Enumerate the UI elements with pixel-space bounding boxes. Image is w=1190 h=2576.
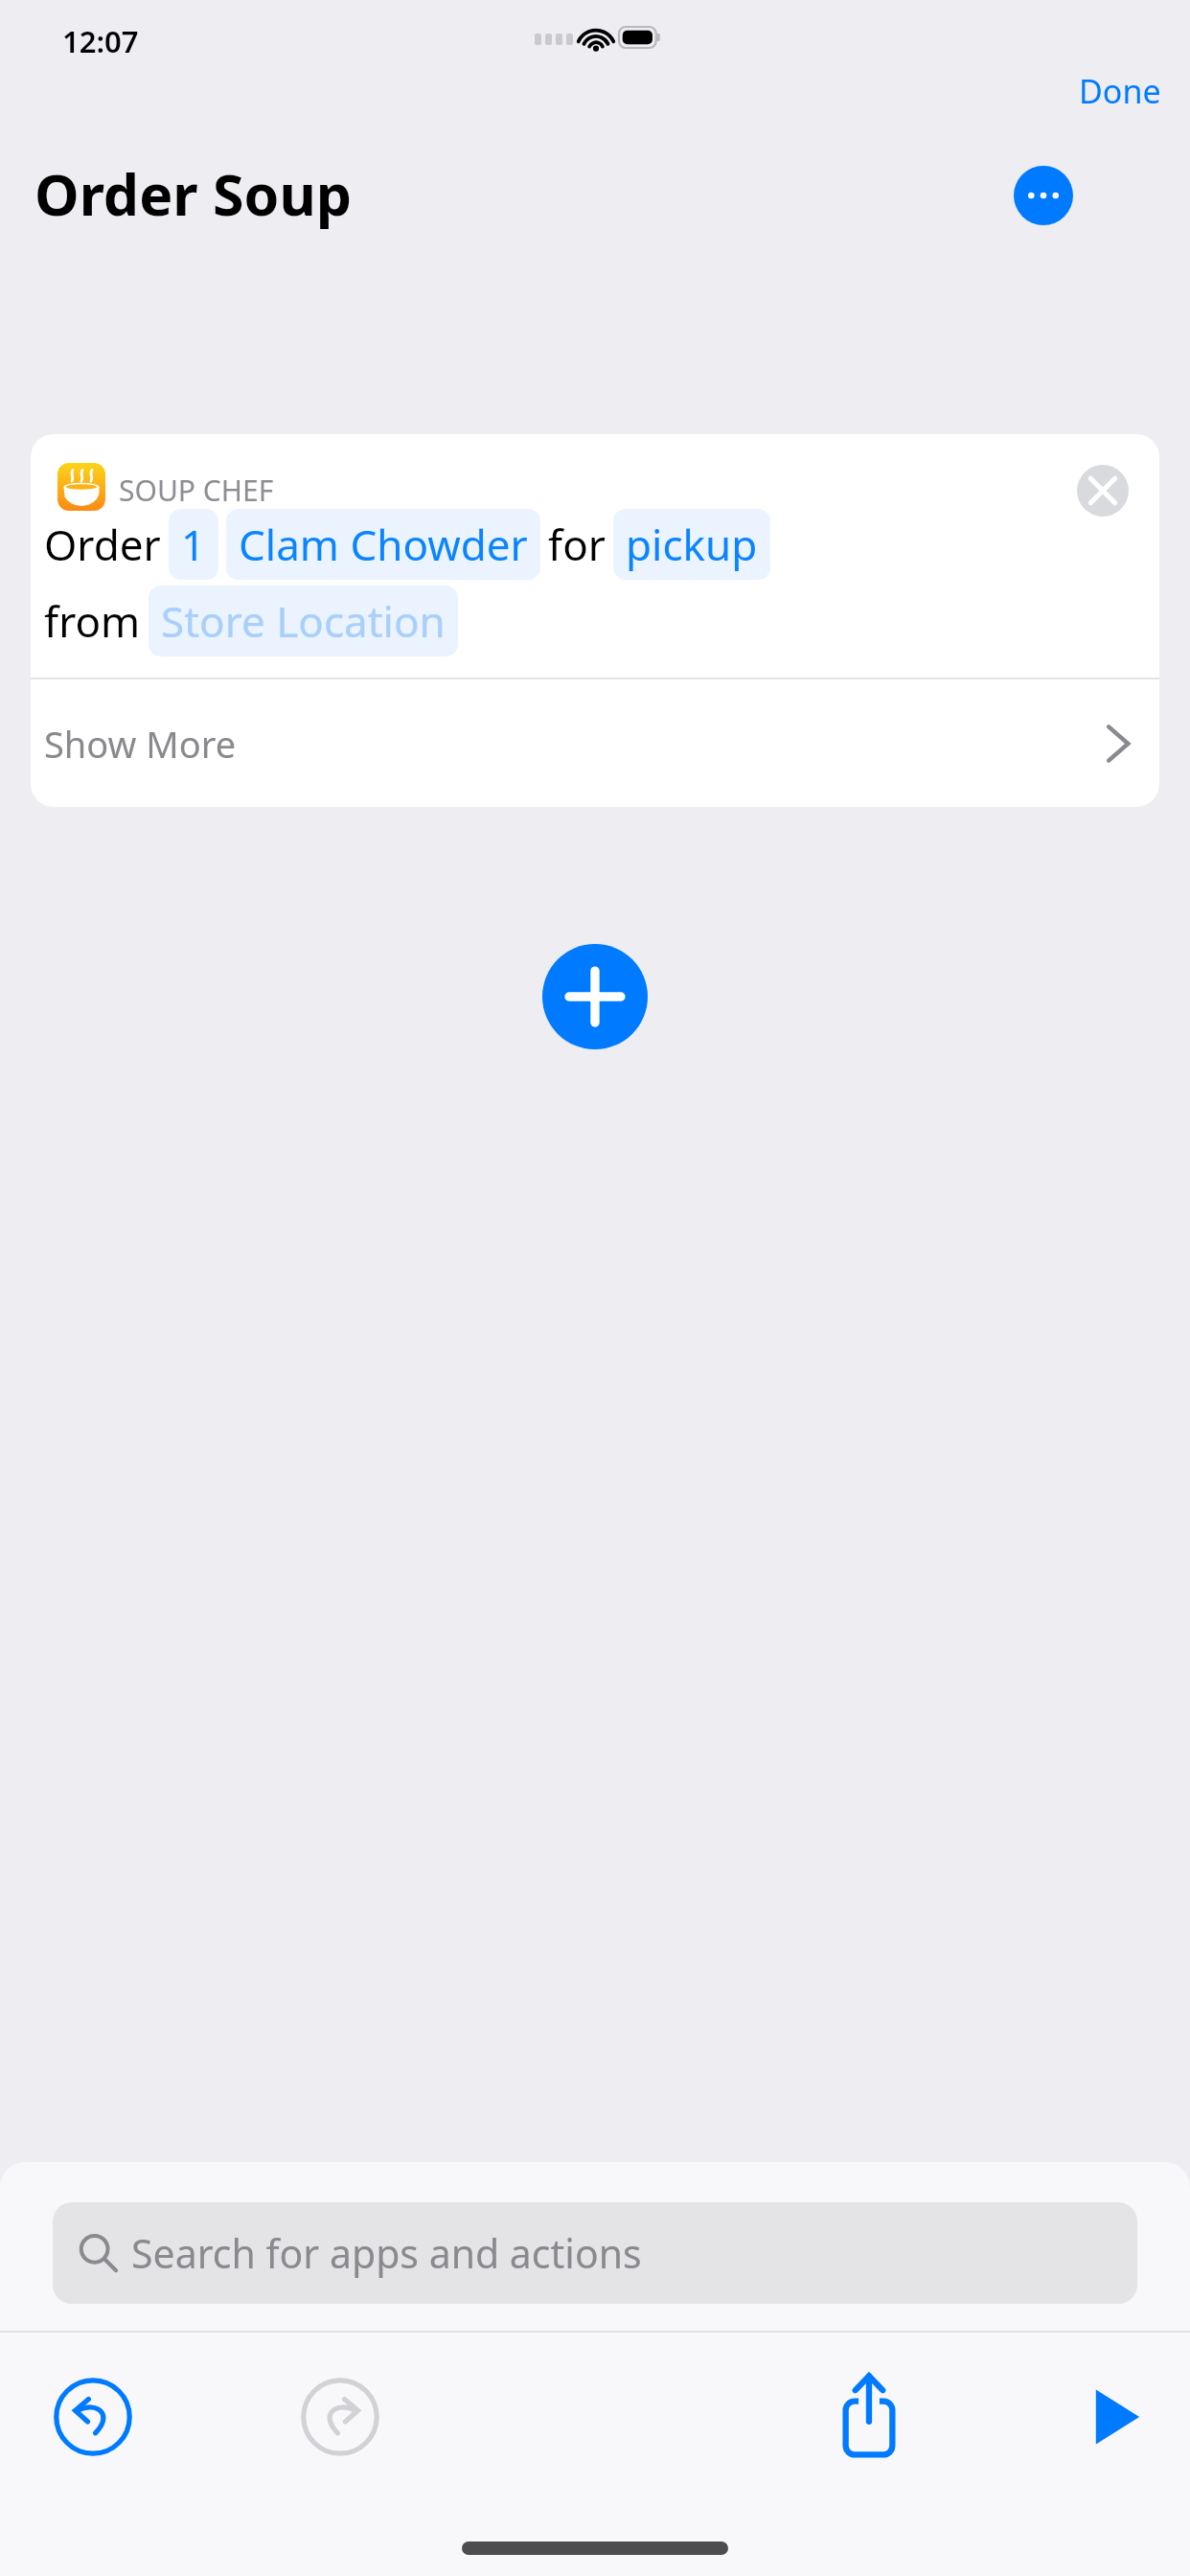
button[interactable]: Show More: [31, 679, 1159, 807]
button[interactable]: Share: [829, 2371, 909, 2463]
staticText: Order: [44, 516, 161, 573]
staticText: Done: [1079, 69, 1161, 113]
staticText: Order Soup: [34, 155, 353, 232]
button[interactable]: Store Location: [149, 586, 458, 656]
staticText: from: [44, 592, 141, 650]
button[interactable]: Clam Chowder: [226, 509, 540, 580]
button[interactable]: Run shortcut: [1075, 2377, 1156, 2457]
button[interactable]: Redo: [300, 2377, 380, 2457]
staticText: pickup: [626, 516, 758, 573]
button[interactable]: Undo: [53, 2377, 133, 2457]
staticText: Show More: [44, 719, 237, 769]
button[interactable]: 1: [169, 509, 218, 580]
button[interactable]: pickup: [613, 509, 770, 580]
button[interactable]: Add action: [542, 944, 648, 1049]
staticText: for: [548, 516, 606, 573]
button[interactable]: More options: [1014, 166, 1073, 225]
staticText: Store Location: [161, 592, 446, 650]
staticText: 12:07: [62, 21, 139, 61]
button[interactable]: Search for apps and actions: [53, 2202, 1137, 2304]
staticText: Search for apps and actions: [131, 2226, 642, 2280]
button[interactable]: Done: [1050, 57, 1190, 125]
staticText: Clam Chowder: [239, 516, 528, 573]
button[interactable]: Remove action: [1077, 465, 1129, 517]
staticText: 1: [181, 516, 206, 573]
staticText: SOUP CHEF: [119, 471, 274, 510]
